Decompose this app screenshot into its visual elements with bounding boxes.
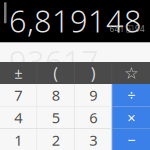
staticText: 4 <box>14 108 22 127</box>
staticText: 641 <box>109 24 124 34</box>
staticText: 8 <box>52 85 60 105</box>
button[interactable]: ( <box>37 62 74 84</box>
button[interactable]: 6 <box>75 106 112 128</box>
button[interactable]: 5 <box>37 106 74 128</box>
staticText: 1 <box>14 130 22 150</box>
staticText: ) <box>91 62 96 84</box>
staticText: ÷ <box>128 24 132 33</box>
staticText: 5 <box>52 108 60 127</box>
button[interactable]: 2 <box>37 129 74 150</box>
staticText: ± <box>14 63 22 83</box>
staticText: 94 <box>135 24 145 34</box>
button[interactable]: ☆ <box>112 62 150 84</box>
staticText: 2 <box>52 130 60 150</box>
staticText: 3 <box>89 130 97 150</box>
staticText: 9 <box>89 85 97 105</box>
staticText: ÷ <box>127 85 135 105</box>
button[interactable]: 4 <box>0 106 37 128</box>
staticText: × <box>127 108 135 127</box>
button[interactable]: ± <box>0 62 37 84</box>
staticText: ☆ <box>124 64 138 82</box>
staticText: 6 <box>89 108 97 127</box>
button[interactable]: 7 <box>0 84 37 106</box>
button[interactable]: 3 <box>75 129 112 150</box>
button[interactable]: × <box>112 106 150 128</box>
button[interactable]: 1 <box>0 129 37 150</box>
staticText: 6,81914893617 <box>9 0 142 82</box>
staticText: − <box>127 130 135 150</box>
button[interactable]: − <box>112 129 150 150</box>
button[interactable]: 9 <box>75 84 112 106</box>
button[interactable]: 8 <box>37 84 74 106</box>
staticText: ( <box>53 62 58 84</box>
button[interactable]: ) <box>75 62 112 84</box>
button[interactable]: ÷ <box>112 84 150 106</box>
staticText: 7 <box>14 85 22 105</box>
